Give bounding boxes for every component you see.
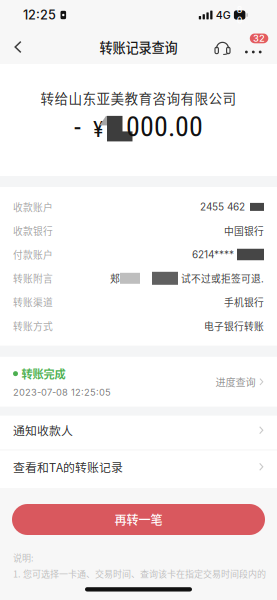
staticText: 试不过或拒签可退. <box>181 271 264 285</box>
staticText: 转账渠道 <box>13 295 53 309</box>
staticText: 电子银行转账 <box>204 319 264 333</box>
staticText: ¥ <box>93 116 104 142</box>
staticText: 转账方式 <box>13 319 53 333</box>
button[interactable]: 查看和TA的转账记录 <box>0 451 277 488</box>
button[interactable]: 通知收款人 <box>0 416 277 450</box>
button[interactable]: 进度查询 <box>216 374 264 389</box>
staticText: 2455 462 <box>200 201 245 213</box>
staticText: 查看和TA的转账记录 <box>13 458 123 475</box>
staticText: 通知收款人 <box>13 422 73 439</box>
button[interactable]: 再转一笔 <box>12 504 265 535</box>
staticText: 4G <box>216 8 231 21</box>
staticText: 转给山东亚美教育咨询有限公司 <box>40 88 236 108</box>
staticText: 2023-07-08 12:25:05 <box>13 387 111 398</box>
staticText: 付款账户 <box>13 247 53 262</box>
button[interactable]: More <box>245 31 273 63</box>
button[interactable]: Customer service <box>215 31 245 63</box>
staticText: 说明: <box>13 551 34 564</box>
staticText: 转账附言 <box>13 271 53 285</box>
staticText: 80 <box>237 4 243 26</box>
staticText: 32 <box>253 33 265 44</box>
staticText: 中国银行 <box>224 224 264 238</box>
staticText: 000.00 <box>126 110 203 143</box>
staticText: 12:25 <box>23 7 56 23</box>
staticText: 郏 <box>110 271 120 285</box>
staticText: 6214**** <box>192 248 234 261</box>
button[interactable]: Back <box>14 31 42 63</box>
staticText: 收款账户 <box>13 200 53 214</box>
staticText: 转账完成 <box>21 365 65 382</box>
staticText: 手机银行 <box>224 295 264 309</box>
staticText: 进度查询 <box>216 374 256 389</box>
staticText: 收款银行 <box>13 224 53 238</box>
staticText: 再转一笔 <box>114 511 162 528</box>
staticText: - <box>74 110 81 143</box>
staticText: 1. 您可选择一卡通、交易时间、查询该卡在指定交易时间段内的 <box>13 567 266 580</box>
staticText: 转账记录查询 <box>99 37 177 56</box>
